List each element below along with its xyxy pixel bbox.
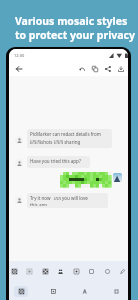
- staticText: shots: [41, 139, 54, 145]
- button[interactable]: Mosaic: [10, 267, 19, 276]
- button[interactable]: Undo: [75, 62, 88, 75]
- button[interactable]: Draw: [118, 267, 127, 276]
- button[interactable]: Save: [114, 62, 127, 75]
- button[interactable]: Pixelate: [41, 267, 50, 276]
- button[interactable]: Mosaic style: [14, 286, 28, 297]
- staticText: you will love: [62, 195, 88, 201]
- staticText: sharing: [63, 139, 81, 145]
- button[interactable]: Sticker: [72, 267, 81, 276]
- button[interactable]: Brush style: [77, 286, 91, 297]
- button[interactable]: Try it now: [27, 193, 108, 208]
- button[interactable]: Crop: [87, 267, 96, 276]
- button[interactable]: Blur style: [46, 286, 60, 297]
- button[interactable]: Have you tried this app?: [27, 156, 90, 168]
- button[interactable]: Share: [101, 62, 114, 75]
- button[interactable]: People: [56, 267, 65, 276]
- button[interactable]: Shape: [103, 267, 112, 276]
- button[interactable]: Back: [11, 61, 26, 76]
- button[interactable]: Blur: [25, 267, 34, 276]
- button[interactable]: PicMarker can redact details from: [27, 129, 112, 148]
- staticText: Various mosaic styles: [15, 14, 128, 28]
- staticText: Have you tried this app?: [30, 158, 81, 164]
- staticText: this app: [30, 202, 47, 206]
- button[interactable]: Swap style: [109, 286, 123, 297]
- staticText: 12:00: [14, 53, 25, 58]
- staticText: Try it now: [30, 195, 51, 201]
- staticText: PicMarker can redact details from: [30, 131, 102, 137]
- staticText: to protect your privacy: [15, 28, 136, 42]
- button[interactable]: Copy: [88, 62, 101, 75]
